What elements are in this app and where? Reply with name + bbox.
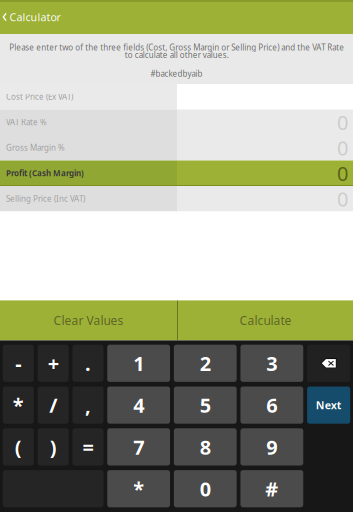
- staticText: 6: [266, 392, 277, 418]
- staticText: +: [48, 350, 59, 377]
- staticText: ): [50, 434, 57, 460]
- button[interactable]: (: [3, 428, 34, 465]
- staticText: 5: [200, 392, 211, 418]
- staticText: 4: [133, 392, 144, 418]
- button[interactable]: Profit (Cash Margin): [0, 160, 353, 186]
- staticText: *: [133, 475, 144, 502]
- staticText: Calculator: [9, 10, 60, 24]
- button[interactable]: 1: [107, 345, 170, 382]
- staticText: 0: [337, 109, 348, 136]
- button[interactable]: Selling Price (Inc VAT): [0, 186, 353, 211]
- button[interactable]: #: [240, 470, 303, 507]
- staticText: ,: [85, 392, 91, 418]
- button[interactable]: +: [38, 345, 69, 382]
- staticText: Gross Margin %: [6, 142, 65, 153]
- button[interactable]: Backspace: [307, 345, 350, 382]
- button[interactable]: 5: [174, 386, 237, 424]
- staticText: =: [82, 434, 93, 460]
- staticText: #backedbyaib: [150, 68, 202, 79]
- button[interactable]: 2: [174, 345, 237, 382]
- staticText: Profit (Cash Margin): [6, 168, 84, 178]
- staticText: 3: [266, 350, 277, 377]
- staticText: *: [13, 392, 24, 418]
- staticText: 1: [133, 350, 144, 377]
- staticText: Calculate: [239, 312, 291, 328]
- staticText: (: [15, 434, 22, 460]
- staticText: .: [85, 350, 91, 377]
- button[interactable]: 8: [174, 428, 237, 465]
- button[interactable]: ,: [72, 386, 103, 424]
- button[interactable]: 4: [107, 386, 170, 424]
- staticText: 0: [337, 134, 348, 161]
- button[interactable]: *: [3, 386, 34, 424]
- staticText: 0: [337, 185, 348, 212]
- button[interactable]: ): [38, 428, 69, 465]
- button[interactable]: *: [107, 470, 170, 507]
- button[interactable]: Next: [307, 386, 350, 424]
- staticText: 0: [200, 475, 211, 502]
- staticText: 8: [200, 434, 211, 460]
- button[interactable]: VAT Rate %: [0, 109, 353, 135]
- button[interactable]: Clear Values: [0, 300, 177, 340]
- button[interactable]: =: [72, 428, 103, 465]
- button[interactable]: /: [38, 386, 69, 424]
- button[interactable]: Calculator: [0, 0, 353, 34]
- button[interactable]: -: [3, 345, 34, 382]
- staticText: Next: [316, 398, 342, 412]
- button[interactable]: 3: [240, 345, 303, 382]
- button[interactable]: 7: [107, 428, 170, 465]
- staticText: 7: [133, 434, 144, 460]
- staticText: /: [49, 392, 57, 418]
- staticText: Selling Price (Inc VAT): [6, 193, 85, 204]
- staticText: Please enter two of the three fields (Co…: [9, 42, 344, 60]
- button[interactable]: Gross Margin %: [0, 135, 353, 160]
- staticText: VAT Rate %: [6, 117, 47, 127]
- staticText: Clear Values: [53, 312, 123, 328]
- staticText: 2: [200, 350, 211, 377]
- button[interactable]: 0: [174, 470, 237, 507]
- button[interactable]: Calculate: [178, 300, 353, 340]
- button[interactable]: .: [72, 345, 103, 382]
- button[interactable]: 9: [240, 428, 303, 465]
- staticText: Cost Price (Ex VAT): [6, 91, 73, 102]
- button[interactable]: 6: [240, 386, 303, 424]
- staticText: 0: [337, 160, 348, 187]
- staticText: -: [15, 350, 21, 377]
- staticText: 9: [266, 434, 277, 460]
- staticText: #: [265, 475, 278, 502]
- button[interactable]: Cost Price (Ex VAT): [0, 84, 353, 109]
